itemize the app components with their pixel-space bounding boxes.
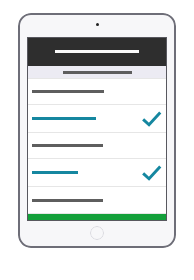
button[interactable]: Home bbox=[90, 226, 104, 240]
button[interactable] bbox=[27, 79, 167, 105]
other: Selected bbox=[142, 111, 161, 127]
button[interactable] bbox=[27, 37, 167, 66]
button[interactable]: Submit bbox=[27, 214, 167, 221]
other: Selected bbox=[142, 165, 161, 181]
button[interactable]: Selected bbox=[27, 105, 167, 133]
button[interactable]: Selected bbox=[27, 159, 167, 187]
button[interactable] bbox=[27, 133, 167, 159]
button[interactable] bbox=[27, 66, 167, 78]
button[interactable] bbox=[27, 187, 167, 214]
